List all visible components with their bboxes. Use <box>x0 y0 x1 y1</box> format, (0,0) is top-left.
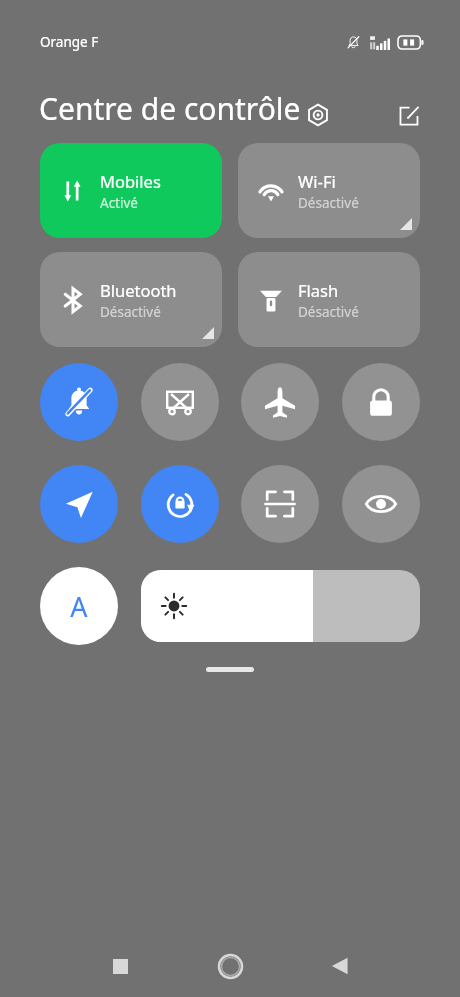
button[interactable]: Verrouiller <box>342 363 420 441</box>
button[interactable]: Luminosité <box>141 570 420 642</box>
button[interactable]: Paramètres <box>303 100 333 130</box>
button[interactable]: Flash <box>238 252 420 347</box>
button[interactable]: Modifier <box>392 98 426 132</box>
button[interactable]: Bluetooth <box>40 252 222 347</box>
staticText: Désactivé <box>298 194 359 212</box>
staticText: Activé <box>100 194 138 212</box>
staticText: A <box>70 588 88 625</box>
button[interactable]: Mode avion <box>241 363 319 441</box>
staticText: Mobiles <box>100 170 161 192</box>
button[interactable]: Récents <box>100 946 140 986</box>
button[interactable]: Retour <box>320 946 360 986</box>
button[interactable]: Wi-Fi <box>238 143 420 238</box>
staticText: Désactivé <box>298 303 359 321</box>
staticText: Désactivé <box>100 303 161 321</box>
staticText: Flash <box>298 279 339 301</box>
staticText: Bluetooth <box>100 279 177 301</box>
button[interactable]: Diffuser l'écran <box>141 363 219 441</box>
button[interactable]: Accueil <box>210 946 250 986</box>
button[interactable]: Mobiles <box>40 143 222 238</box>
button[interactable]: Luminosité automatique <box>40 567 118 645</box>
staticText: Orange F <box>40 33 99 51</box>
staticText: Centre de contrôle <box>39 88 301 129</box>
button[interactable]: Position <box>40 465 118 543</box>
button[interactable]: Rotation automatique <box>141 465 219 543</box>
button[interactable]: Ne pas déranger <box>40 363 118 441</box>
button[interactable]: Scanner <box>241 465 319 543</box>
staticText: Wi-Fi <box>298 170 336 192</box>
button[interactable]: Confort visuel <box>342 465 420 543</box>
